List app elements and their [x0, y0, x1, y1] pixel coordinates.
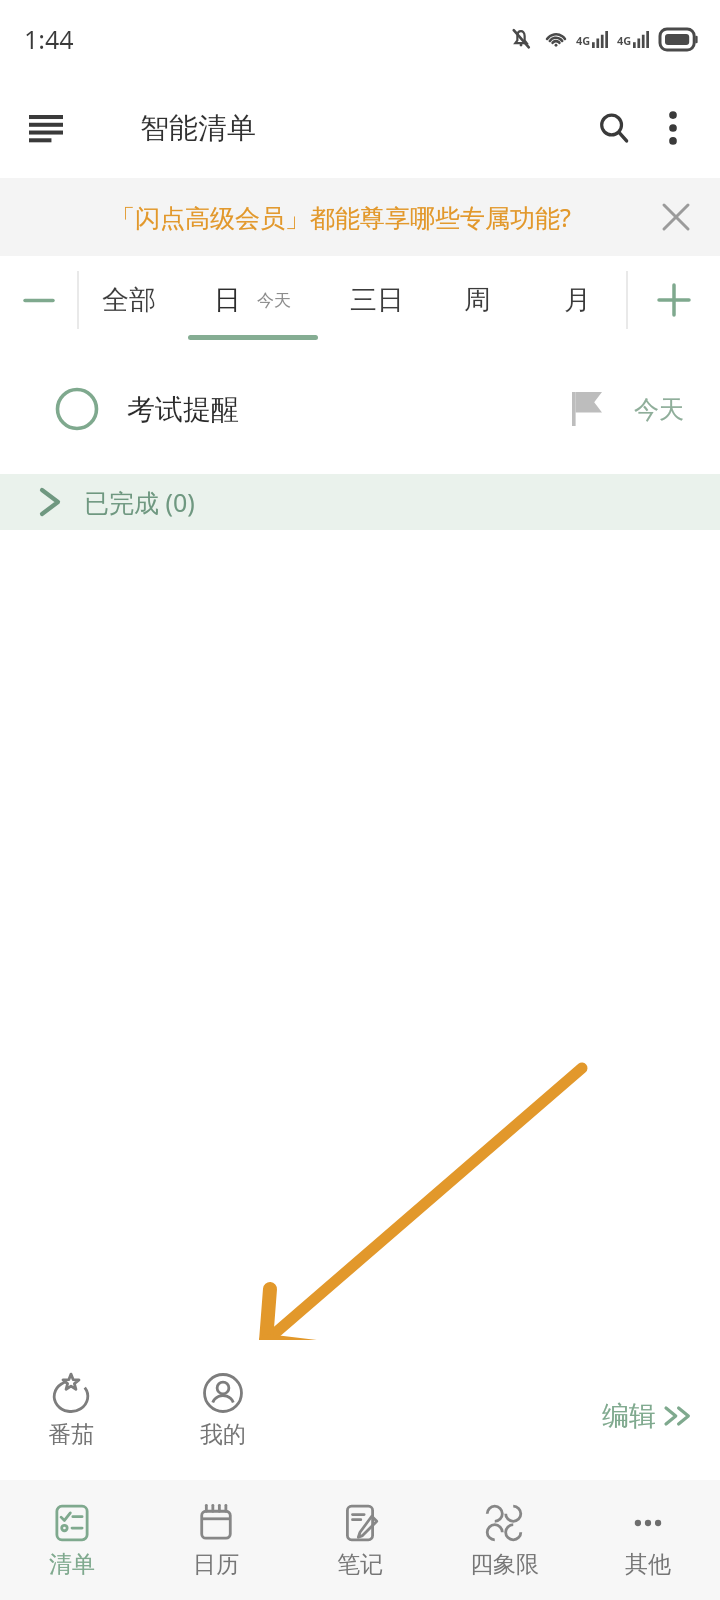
staticText: 周 — [464, 283, 491, 317]
staticText: 智能清单 — [140, 110, 256, 147]
button[interactable]: 已完成 (0) — [0, 474, 720, 530]
staticText: 日历 — [193, 1550, 239, 1579]
staticText: 三日 — [350, 283, 404, 317]
staticText: 今天 — [257, 290, 291, 311]
button[interactable]: 日历 — [144, 1480, 288, 1600]
staticText: 今天 — [634, 394, 684, 425]
staticText: 日 — [214, 283, 241, 317]
button[interactable]: 清单 — [0, 1480, 144, 1600]
button[interactable]: 三日 — [327, 256, 427, 344]
staticText: 4G — [617, 33, 632, 48]
staticText: 笔记 — [337, 1550, 383, 1579]
button[interactable]: Add — [628, 256, 720, 344]
staticText: 编辑 — [602, 1399, 656, 1433]
staticText: 考试提醒 — [127, 392, 239, 427]
staticText: 其他 — [625, 1550, 671, 1579]
staticText: 已完成 (0) — [84, 485, 195, 519]
button[interactable]: 全部 — [79, 256, 178, 344]
button[interactable]: More options — [644, 99, 702, 157]
staticText: 1:44 — [24, 22, 74, 56]
button[interactable]: 四象限 — [432, 1480, 576, 1600]
staticText: 「闪点高级会员」都能尊享哪些专属功能? — [110, 200, 571, 234]
staticText: 月 — [564, 283, 591, 317]
button[interactable]: Close banner — [650, 191, 702, 243]
button[interactable]: 笔记 — [288, 1480, 432, 1600]
button[interactable]: 周 — [427, 256, 527, 344]
button[interactable]: Collapse — [0, 256, 78, 344]
button[interactable]: 番茄 — [48, 1372, 94, 1449]
button[interactable]: Search — [584, 98, 644, 158]
staticText: 四象限 — [470, 1550, 539, 1579]
button[interactable]: 日 — [178, 256, 327, 344]
button[interactable]: Menu — [18, 100, 74, 156]
staticText: 番茄 — [48, 1420, 94, 1449]
button[interactable]: 我的 — [200, 1372, 246, 1449]
button[interactable]: 其他 — [576, 1480, 720, 1600]
staticText: 4G — [576, 33, 591, 48]
button[interactable]: 「闪点高级会员」都能尊享哪些专属功能? — [0, 178, 720, 256]
button[interactable]: 考试提醒 — [0, 344, 720, 474]
staticText: 全部 — [102, 283, 156, 317]
staticText: 清单 — [49, 1550, 95, 1579]
staticText: 我的 — [200, 1420, 246, 1449]
button[interactable]: 月 — [527, 256, 627, 344]
button[interactable]: 编辑 — [602, 1399, 692, 1433]
